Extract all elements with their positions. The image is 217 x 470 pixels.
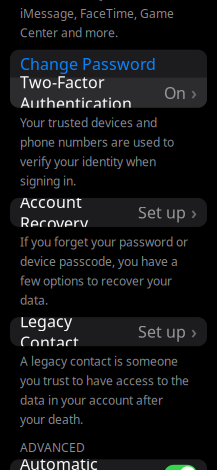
button[interactable]: Legacy Contact bbox=[10, 317, 207, 346]
staticText: If you forget your password or device pa… bbox=[20, 234, 188, 308]
button[interactable]: Automatic Verification bbox=[10, 459, 207, 470]
staticText: Automatic Verification bbox=[20, 453, 106, 470]
staticText: Change Password bbox=[20, 53, 156, 74]
button[interactable]: Account Recovery bbox=[10, 198, 207, 227]
staticText: On bbox=[164, 82, 186, 103]
button[interactable]: Change Password bbox=[10, 50, 207, 78]
staticText: Your trusted devices and phone numbers a… bbox=[20, 115, 174, 189]
staticText: Set up bbox=[138, 202, 186, 223]
staticText: › bbox=[191, 201, 197, 224]
staticText: › bbox=[191, 81, 197, 104]
staticText: A legacy contact is someone you trust to… bbox=[20, 353, 189, 427]
staticText: › bbox=[191, 320, 197, 343]
staticText: ADVANCED bbox=[20, 439, 85, 455]
staticText: Set up bbox=[138, 321, 186, 342]
staticText: Legacy Contact bbox=[20, 310, 79, 353]
staticText: Two-Factor Authentication bbox=[20, 71, 132, 114]
button[interactable]: Two-Factor Authentication bbox=[10, 78, 207, 108]
staticText: These email addresses and phone numbers … bbox=[20, 0, 178, 41]
staticText: Account Recovery bbox=[20, 191, 88, 234]
